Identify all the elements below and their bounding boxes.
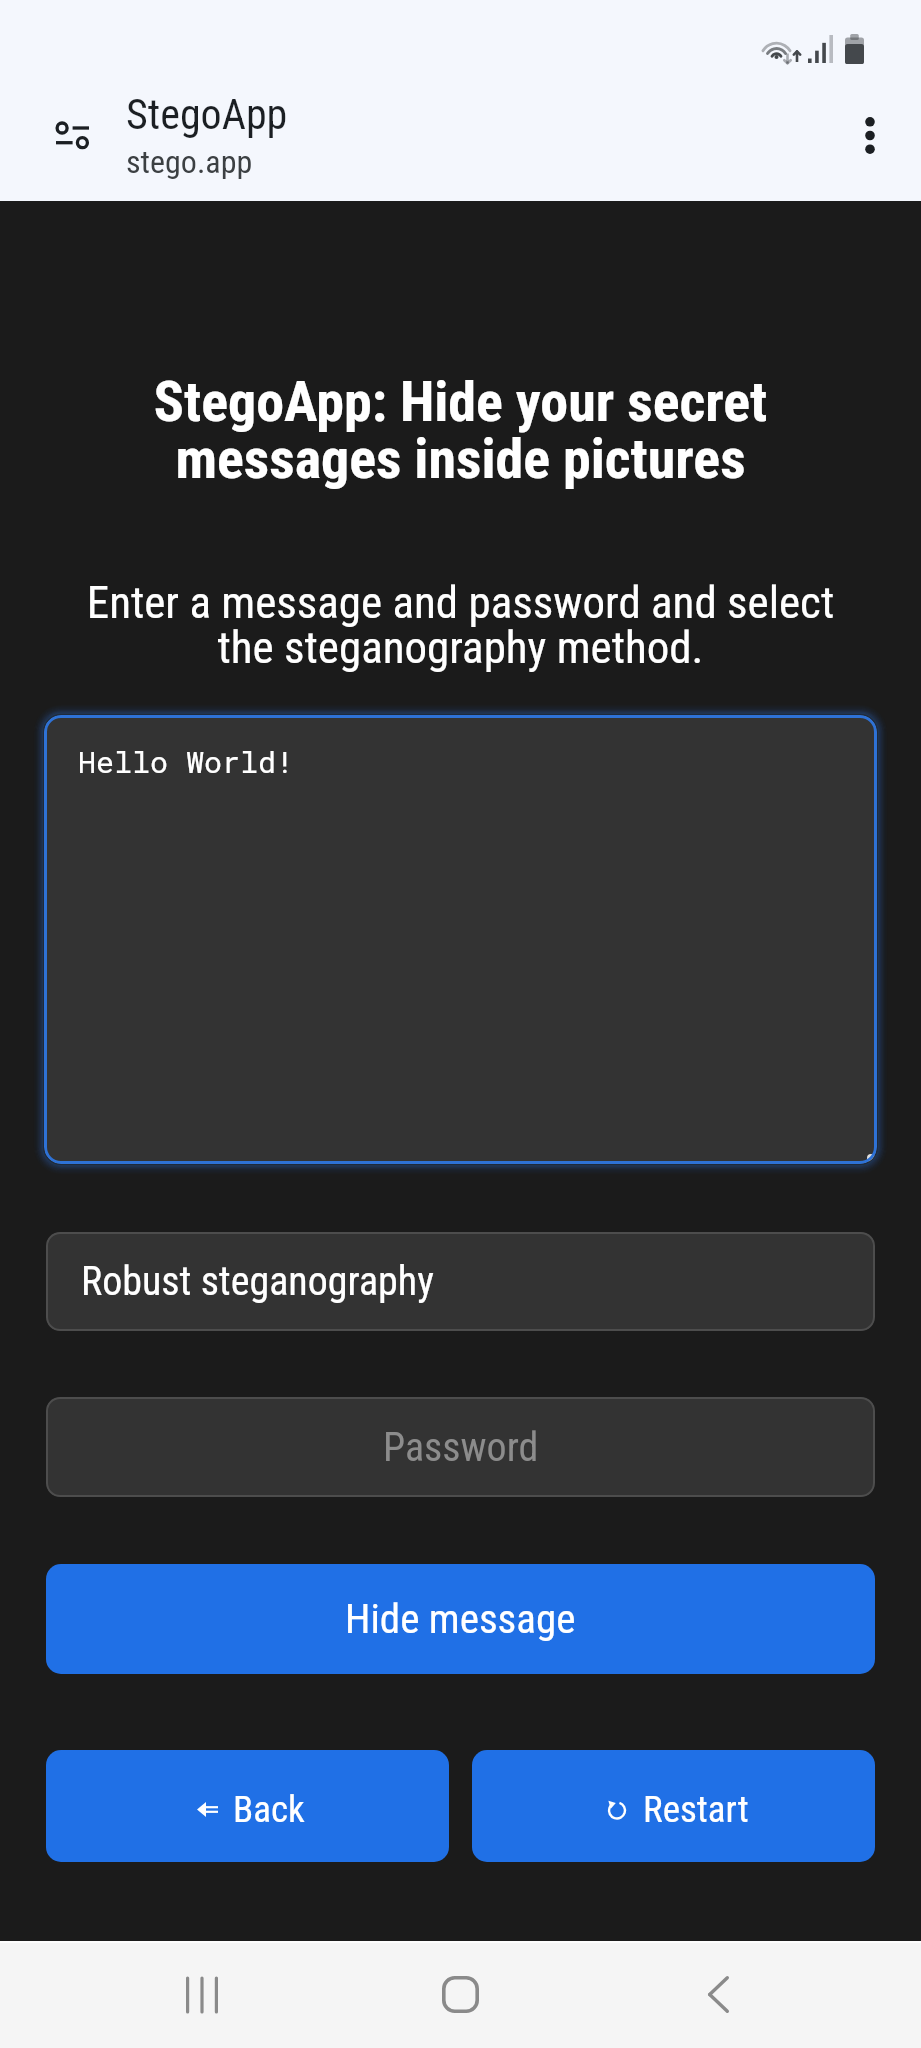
- button[interactable]: Password: [46, 1397, 875, 1497]
- staticText: stego.app: [126, 143, 253, 181]
- staticText: Hello World!: [78, 742, 295, 782]
- staticText: Robust steganography: [81, 1258, 434, 1305]
- staticText: Password: [383, 1424, 539, 1471]
- staticText: StegoApp: Hide your secret messages insi…: [0, 369, 921, 492]
- button[interactable]: More options: [841, 103, 899, 167]
- button[interactable]: Page info: [38, 102, 106, 168]
- button[interactable]: Home: [410, 1943, 510, 2046]
- staticText: Hide message: [345, 1595, 576, 1643]
- button[interactable]: Recents: [152, 1943, 252, 2046]
- button[interactable]: Back: [46, 1750, 449, 1862]
- button[interactable]: Hello World!: [44, 715, 877, 1164]
- button[interactable]: Hide message: [46, 1564, 875, 1674]
- staticText: StegoApp: [126, 90, 288, 139]
- staticText: Back: [233, 1788, 305, 1831]
- staticText: Restart: [643, 1788, 749, 1831]
- button[interactable]: Robust steganography: [46, 1232, 875, 1331]
- button[interactable]: Back: [668, 1943, 768, 2046]
- button[interactable]: Restart: [472, 1750, 875, 1862]
- staticText: Enter a message and password and select …: [0, 576, 921, 674]
